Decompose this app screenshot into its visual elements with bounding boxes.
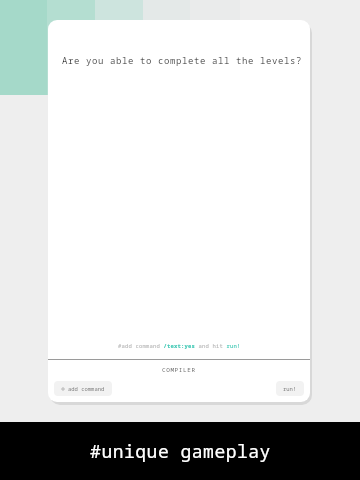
staticText: run! xyxy=(283,385,297,392)
staticText: #unique gameplay xyxy=(90,439,271,464)
staticText: add command xyxy=(68,385,105,392)
staticText: Are you able to complete all the levels? xyxy=(62,54,303,66)
staticText: #add command /text:yes and hit run! xyxy=(118,342,241,349)
button[interactable]: add command xyxy=(54,381,112,396)
staticText: COMPILER xyxy=(162,366,196,374)
button[interactable]: run! xyxy=(276,381,304,396)
